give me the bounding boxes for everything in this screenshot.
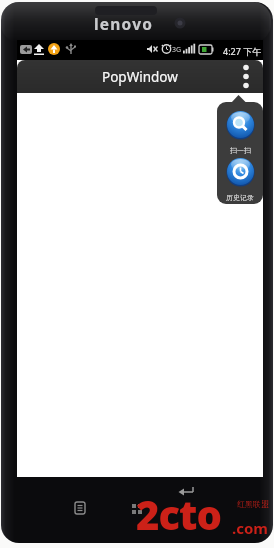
- staticText: 扫一扫: [230, 146, 251, 154]
- button[interactable]: [128, 500, 146, 518]
- button[interactable]: 历史记录: [220, 155, 260, 201]
- button[interactable]: [176, 482, 198, 502]
- staticText: 红黑联盟: [237, 499, 269, 509]
- staticText: 4:27 下午: [223, 45, 262, 57]
- staticText: .com: [232, 518, 268, 538]
- staticText: 2cto: [136, 487, 221, 541]
- staticText: 3G: [172, 45, 182, 55]
- staticText: PopWindow: [102, 68, 178, 86]
- button[interactable]: 扫一扫: [220, 108, 260, 154]
- staticText: lenovo: [94, 13, 154, 34]
- button[interactable]: [70, 498, 90, 518]
- staticText: 历史记录: [226, 193, 254, 201]
- button[interactable]: [231, 62, 260, 91]
